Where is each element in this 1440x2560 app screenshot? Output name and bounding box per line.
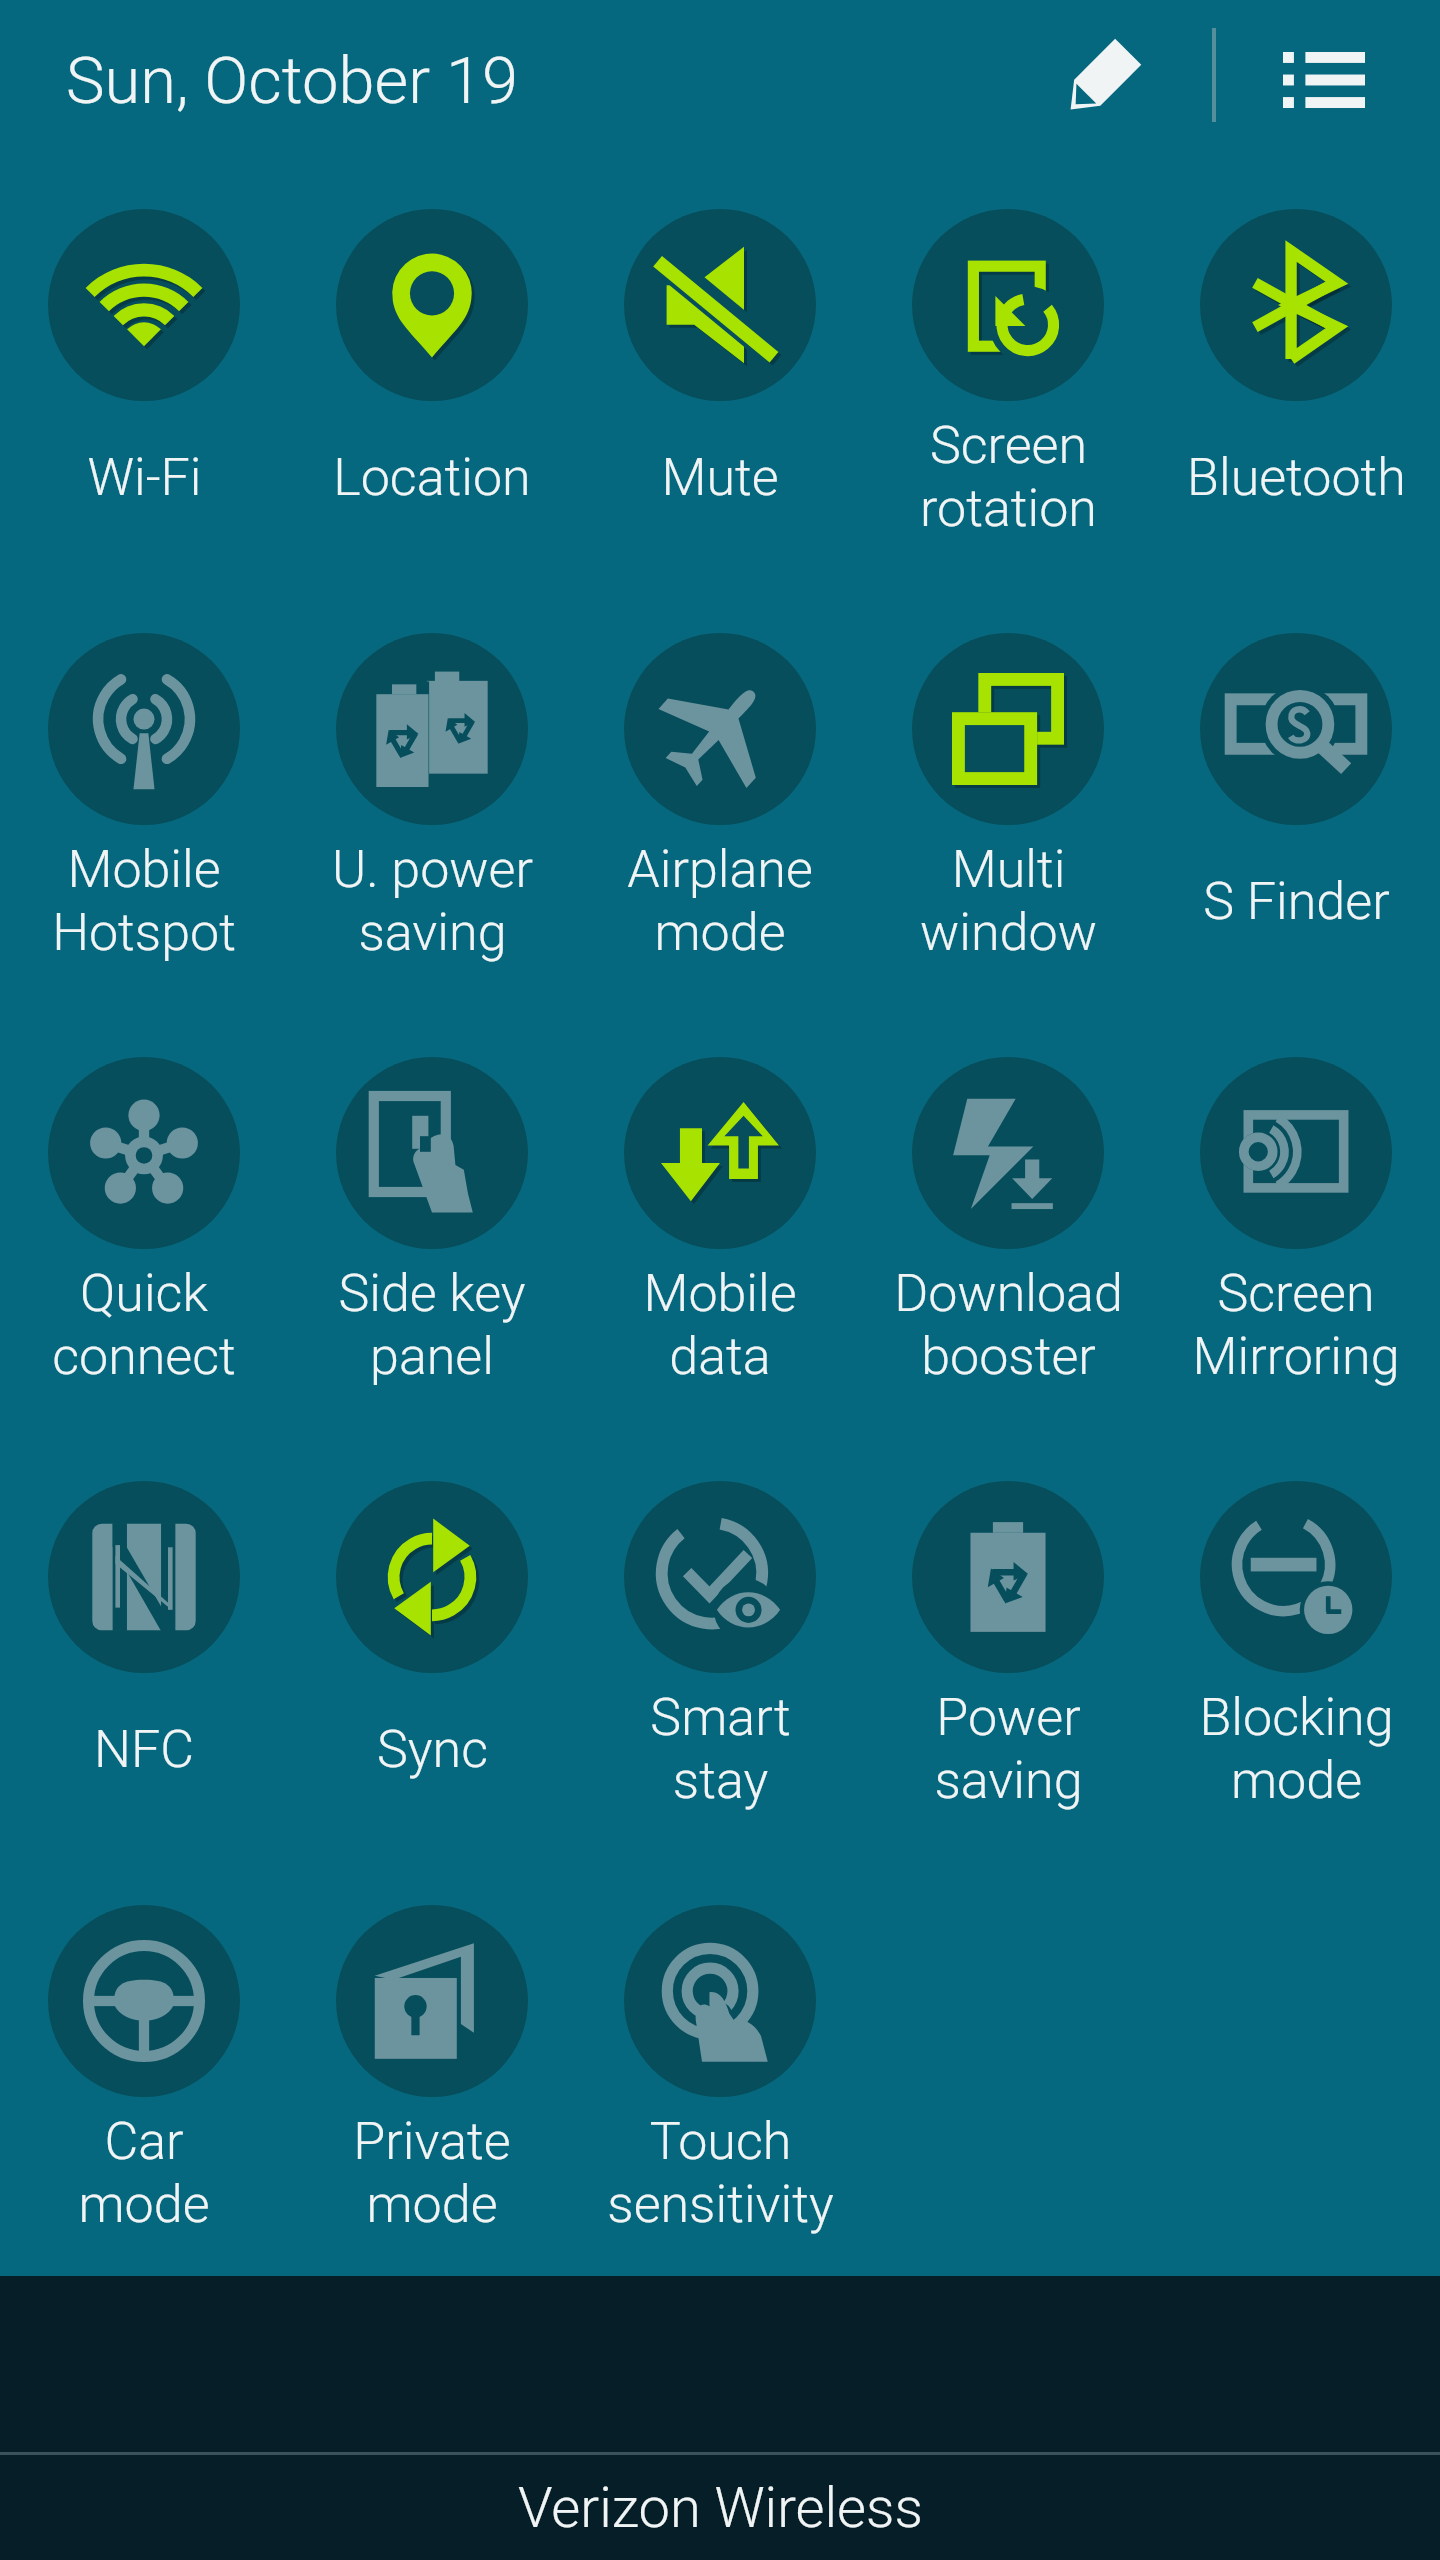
staticText: Location xyxy=(333,447,531,508)
staticText: Side key panel xyxy=(338,1263,526,1387)
staticText: S Finder xyxy=(1203,871,1390,932)
button[interactable]: Multi window xyxy=(864,633,1152,1013)
staticText: Multi window xyxy=(920,839,1097,963)
button[interactable]: Car mode xyxy=(0,1905,288,2285)
button[interactable]: Quick settings list xyxy=(1250,20,1398,140)
button[interactable]: Quick connect xyxy=(0,1057,288,1437)
button[interactable]: Mute xyxy=(576,209,864,589)
staticText: Touch sensitivity xyxy=(607,2111,834,2235)
button[interactable]: Touch sensitivity xyxy=(576,1905,864,2285)
button[interactable]: Side key panel xyxy=(288,1057,576,1437)
staticText: Mobile Hotspot xyxy=(52,839,236,963)
staticText: Verizon Wireless xyxy=(518,2475,923,2541)
staticText: Bluetooth xyxy=(1187,447,1406,508)
staticText: Mobile data xyxy=(643,1263,797,1387)
button[interactable]: U. power saving xyxy=(288,633,576,1013)
button[interactable]: Location xyxy=(288,209,576,589)
staticText: Screen Mirroring xyxy=(1192,1263,1400,1387)
staticText: Sync xyxy=(377,1719,488,1780)
staticText: Screen rotation xyxy=(920,415,1097,539)
staticText: Quick connect xyxy=(52,1263,236,1387)
button[interactable]: Download booster xyxy=(864,1057,1152,1437)
button[interactable]: Wi-Fi xyxy=(0,209,288,589)
staticText: Airplane mode xyxy=(627,839,813,963)
staticText: Mute xyxy=(661,447,779,508)
staticText: Smart stay xyxy=(650,1687,791,1811)
button[interactable]: Verizon Wireless xyxy=(0,2455,1440,2560)
staticText: Power saving xyxy=(934,1687,1083,1811)
button[interactable]: Bluetooth xyxy=(1152,209,1440,589)
staticText: Sun, October 19 xyxy=(66,43,518,119)
staticText: Blocking mode xyxy=(1199,1687,1394,1811)
staticText: Download booster xyxy=(894,1263,1123,1387)
staticText: Private mode xyxy=(353,2111,511,2235)
button[interactable]: Blocking mode xyxy=(1152,1481,1440,1861)
button[interactable]: Edit quick settings xyxy=(1030,20,1170,140)
button[interactable]: Sync xyxy=(288,1481,576,1861)
button[interactable]: Screen Mirroring xyxy=(1152,1057,1440,1437)
button[interactable]: Screen rotation xyxy=(864,209,1152,589)
button[interactable]: S Finder xyxy=(1152,633,1440,1013)
staticText: U. power saving xyxy=(332,839,533,963)
button[interactable]: Smart stay xyxy=(576,1481,864,1861)
staticText: Car mode xyxy=(78,2111,210,2235)
button[interactable]: Mobile data xyxy=(576,1057,864,1437)
button[interactable]: Mobile Hotspot xyxy=(0,633,288,1013)
button[interactable]: Private mode xyxy=(288,1905,576,2285)
staticText: NFC xyxy=(94,1719,194,1780)
button[interactable]: Power saving xyxy=(864,1481,1152,1861)
button[interactable]: NFC xyxy=(0,1481,288,1861)
button[interactable]: Airplane mode xyxy=(576,633,864,1013)
staticText: Wi-Fi xyxy=(87,447,202,508)
